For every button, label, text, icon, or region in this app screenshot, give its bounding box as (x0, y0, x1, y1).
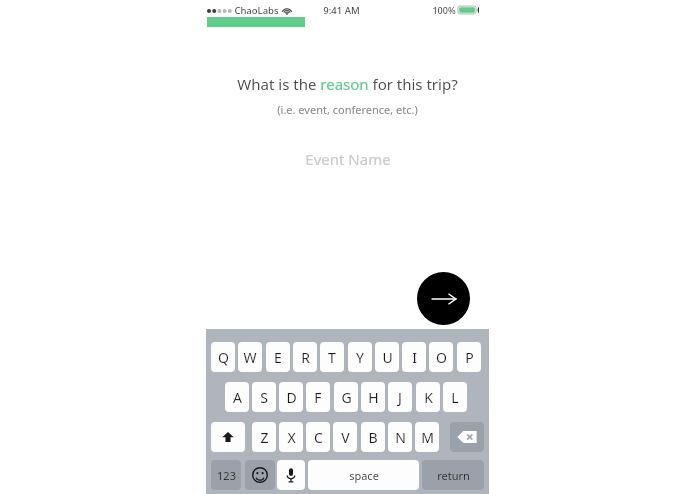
staticText: return (437, 468, 470, 483)
staticText: Event Name (305, 149, 391, 169)
staticText: A (233, 388, 242, 407)
staticText: 123 (217, 468, 236, 483)
button[interactable]: N (388, 422, 412, 452)
button[interactable]: O (429, 342, 453, 372)
staticText: C (314, 428, 323, 447)
button[interactable]: Backspace (450, 422, 484, 452)
staticText: 9:41 AM (323, 4, 360, 17)
button[interactable]: M (415, 422, 439, 452)
staticText: R (301, 348, 310, 367)
staticText: V (341, 428, 350, 447)
staticText: U (382, 348, 393, 367)
staticText: B (368, 428, 378, 447)
staticText: Y (356, 348, 364, 367)
button[interactable]: X (279, 422, 303, 452)
staticText: H (368, 388, 379, 407)
staticText: L (451, 388, 459, 407)
button[interactable]: H (361, 382, 385, 412)
staticText: space (349, 468, 379, 483)
button[interactable]: space (308, 460, 419, 490)
staticText: E (274, 348, 282, 367)
button[interactable]: Dictate (277, 460, 305, 490)
staticText: What is the reason for this trip? (237, 74, 458, 94)
button[interactable]: V (333, 422, 357, 452)
staticText: ChaoLabs (234, 4, 279, 17)
button[interactable]: D (279, 382, 303, 412)
button[interactable]: Emoji (245, 460, 275, 490)
button[interactable]: Shift (211, 422, 245, 452)
staticText: I (412, 348, 417, 367)
button[interactable]: K (416, 382, 440, 412)
staticText: G (341, 388, 352, 407)
staticText: W (243, 348, 257, 367)
button[interactable]: A (225, 382, 249, 412)
button[interactable]: Q (211, 342, 235, 372)
button[interactable]: Event Name (0, 146, 695, 172)
staticText: Q (218, 348, 229, 367)
button[interactable]: return (422, 460, 484, 490)
button[interactable]: C (306, 422, 330, 452)
staticText: (i.e. event, conference, etc.) (277, 102, 418, 117)
staticText: N (395, 428, 406, 447)
button[interactable]: Next (417, 272, 470, 325)
staticText: P (465, 348, 474, 367)
staticText: J (398, 388, 402, 407)
button[interactable]: Y (348, 342, 372, 372)
staticText: O (436, 348, 447, 367)
staticText: S (260, 388, 268, 407)
button[interactable]: U (375, 342, 399, 372)
staticText: D (286, 388, 297, 407)
button[interactable]: W (238, 342, 262, 372)
button[interactable]: E (266, 342, 290, 372)
button[interactable]: G (334, 382, 358, 412)
button[interactable]: F (306, 382, 330, 412)
button[interactable]: I (402, 342, 426, 372)
staticText: F (314, 388, 322, 407)
staticText: X (287, 428, 296, 447)
staticText: M (421, 428, 434, 447)
button[interactable]: J (388, 382, 412, 412)
button[interactable]: R (293, 342, 317, 372)
staticText: K (424, 388, 433, 407)
button[interactable]: B (361, 422, 385, 452)
button[interactable]: P (457, 342, 481, 372)
button[interactable]: T (320, 342, 344, 372)
button[interactable]: Numbers (211, 460, 241, 490)
button[interactable]: S (252, 382, 276, 412)
staticText: 100% (432, 4, 456, 16)
button[interactable]: Z (252, 422, 276, 452)
button[interactable]: L (443, 382, 467, 412)
staticText: Z (260, 428, 269, 447)
staticText: T (328, 348, 336, 367)
